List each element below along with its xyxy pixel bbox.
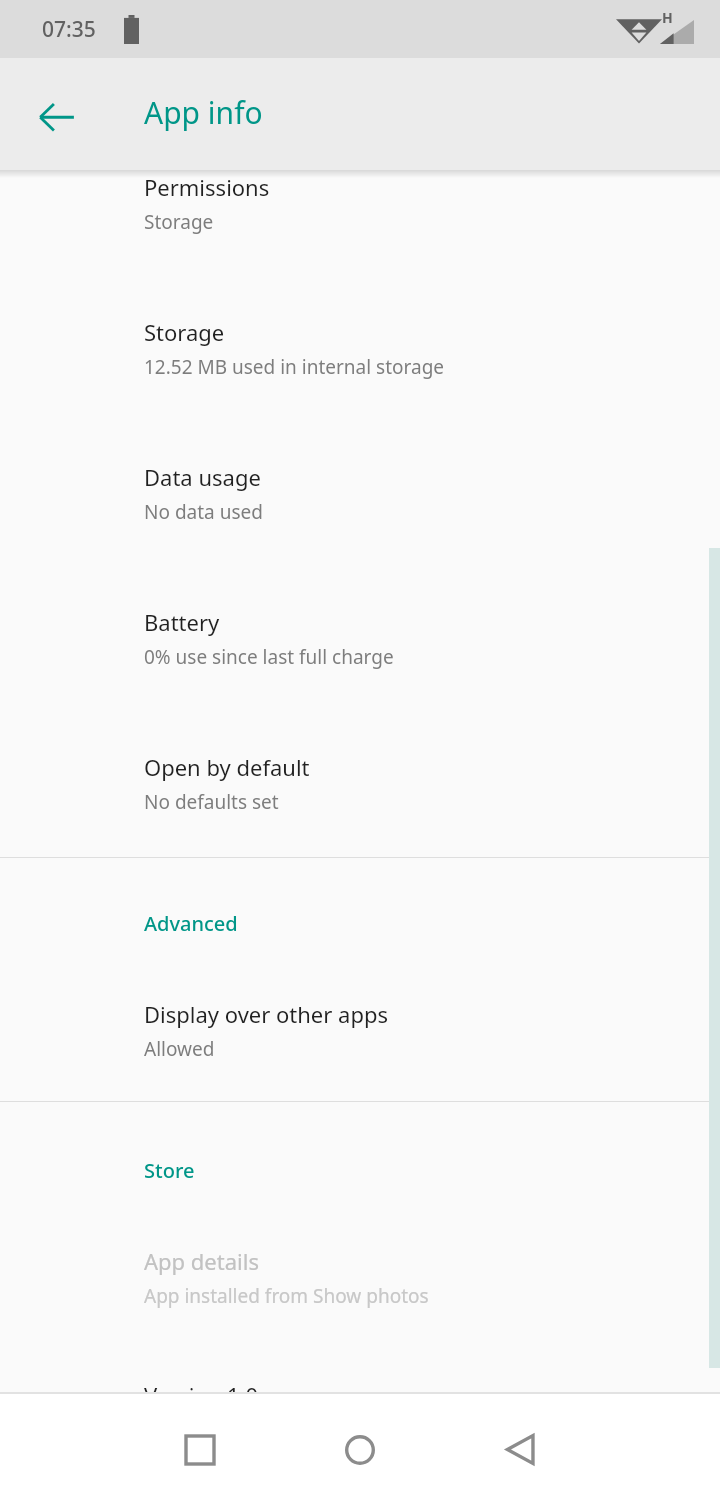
button[interactable]: Display over other apps: [0, 999, 720, 1062]
staticText: 12.52 MB used in internal storage: [144, 354, 445, 380]
staticText: Display over other apps: [144, 999, 389, 1029]
staticText: 07:35: [42, 15, 96, 44]
button[interactable]: Permissions: [0, 172, 720, 235]
button[interactable]: Home: [320, 1410, 400, 1490]
button[interactable]: Back: [20, 80, 92, 152]
staticText: App installed from Show photos: [144, 1283, 429, 1309]
staticText: No data used: [144, 499, 263, 525]
button[interactable]: Back: [480, 1410, 560, 1490]
staticText: H: [662, 8, 673, 27]
button[interactable]: Storage: [0, 317, 720, 380]
staticText: Storage: [144, 209, 214, 235]
staticText: Store: [144, 1157, 195, 1184]
button[interactable]: Open by default: [0, 752, 720, 815]
staticText: Data usage: [144, 462, 261, 492]
staticText: 0% use since last full charge: [144, 644, 394, 670]
button[interactable]: Battery: [0, 607, 720, 670]
staticText: Advanced: [144, 910, 238, 937]
button[interactable]: Data usage: [0, 462, 720, 525]
button[interactable]: Version 1.0: [0, 1380, 720, 1392]
staticText: Open by default: [144, 752, 310, 782]
staticText: No defaults set: [144, 789, 279, 815]
staticText: Permissions: [144, 172, 270, 202]
button[interactable]: App details: [0, 1246, 720, 1309]
staticText: Version 1.0: [144, 1380, 259, 1392]
button[interactable]: Recent apps: [160, 1410, 240, 1490]
staticText: Battery: [144, 607, 220, 637]
staticText: App details: [144, 1246, 259, 1276]
staticText: Allowed: [144, 1036, 215, 1062]
staticText: App info: [144, 92, 263, 133]
staticText: Storage: [144, 317, 225, 347]
